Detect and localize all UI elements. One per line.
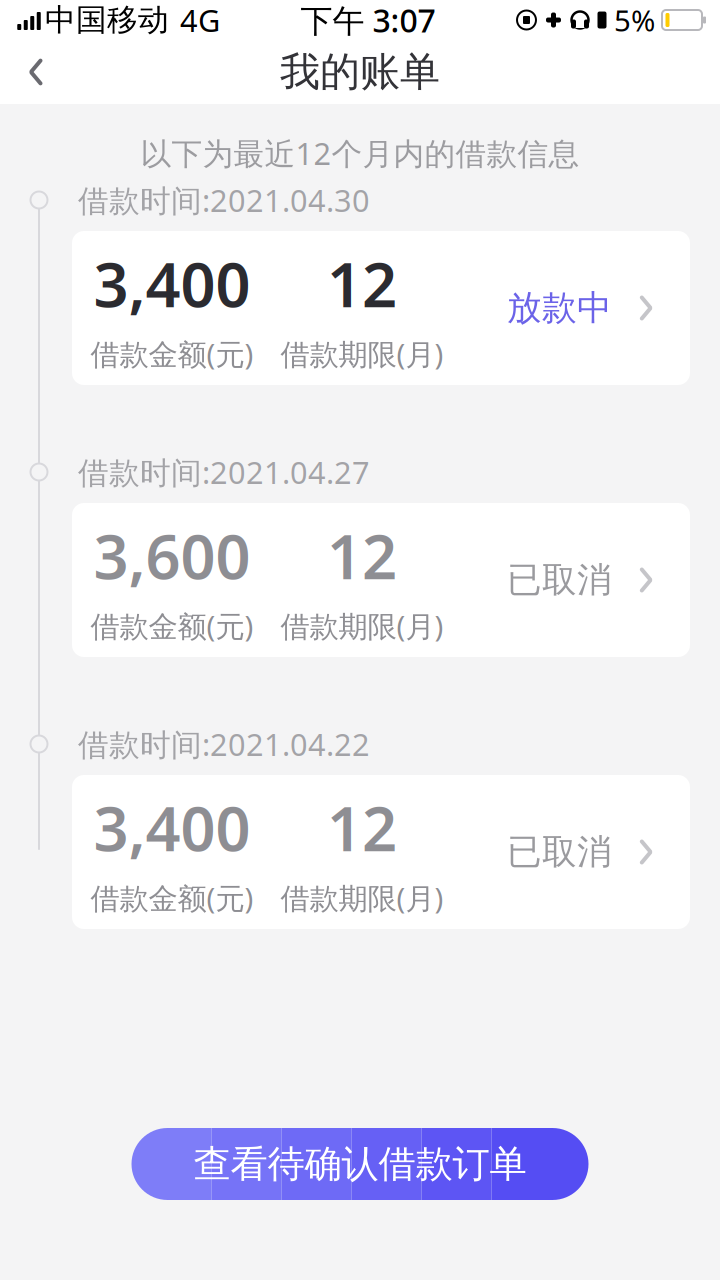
staticText: 已取消 [507, 559, 612, 601]
staticText: 借款期限(月) [280, 878, 443, 917]
staticText: 中国移动 [45, 1, 169, 39]
staticText: 12 [327, 515, 397, 596]
staticText: 下午 3:07 [300, 0, 435, 41]
staticText: 借款时间:2021.04.27 [78, 452, 370, 492]
staticText: 12 [327, 787, 397, 868]
staticText: 借款期限(月) [280, 606, 443, 645]
staticText: 4G [180, 0, 220, 40]
staticText: 以下为最近12个月内的借款信息 [140, 133, 579, 173]
staticText: 借款时间:2021.04.22 [78, 724, 370, 764]
button[interactable]: 3,400 [72, 775, 690, 929]
button[interactable]: 返回 [0, 40, 72, 104]
staticText: 我的账单 [280, 47, 440, 96]
staticText: 3,400 [93, 243, 250, 324]
staticText: 3,600 [93, 515, 250, 596]
button[interactable]: 3,400 [72, 231, 690, 385]
staticText: 12 [327, 243, 397, 324]
button[interactable]: 查看待确认借款订单 [131, 1128, 588, 1200]
staticText: 借款金额(元) [90, 606, 253, 645]
staticText: 借款金额(元) [90, 334, 253, 373]
staticText: 放款中 [507, 287, 612, 329]
button[interactable]: 3,600 [72, 503, 690, 657]
staticText: 5% [614, 0, 655, 39]
staticText: 已取消 [507, 831, 612, 873]
staticText: 借款金额(元) [90, 878, 253, 917]
staticText: 借款时间:2021.04.30 [78, 180, 370, 220]
staticText: 3,400 [93, 787, 250, 868]
staticText: 借款期限(月) [280, 334, 443, 373]
staticText: 查看待确认借款订单 [193, 1141, 526, 1187]
